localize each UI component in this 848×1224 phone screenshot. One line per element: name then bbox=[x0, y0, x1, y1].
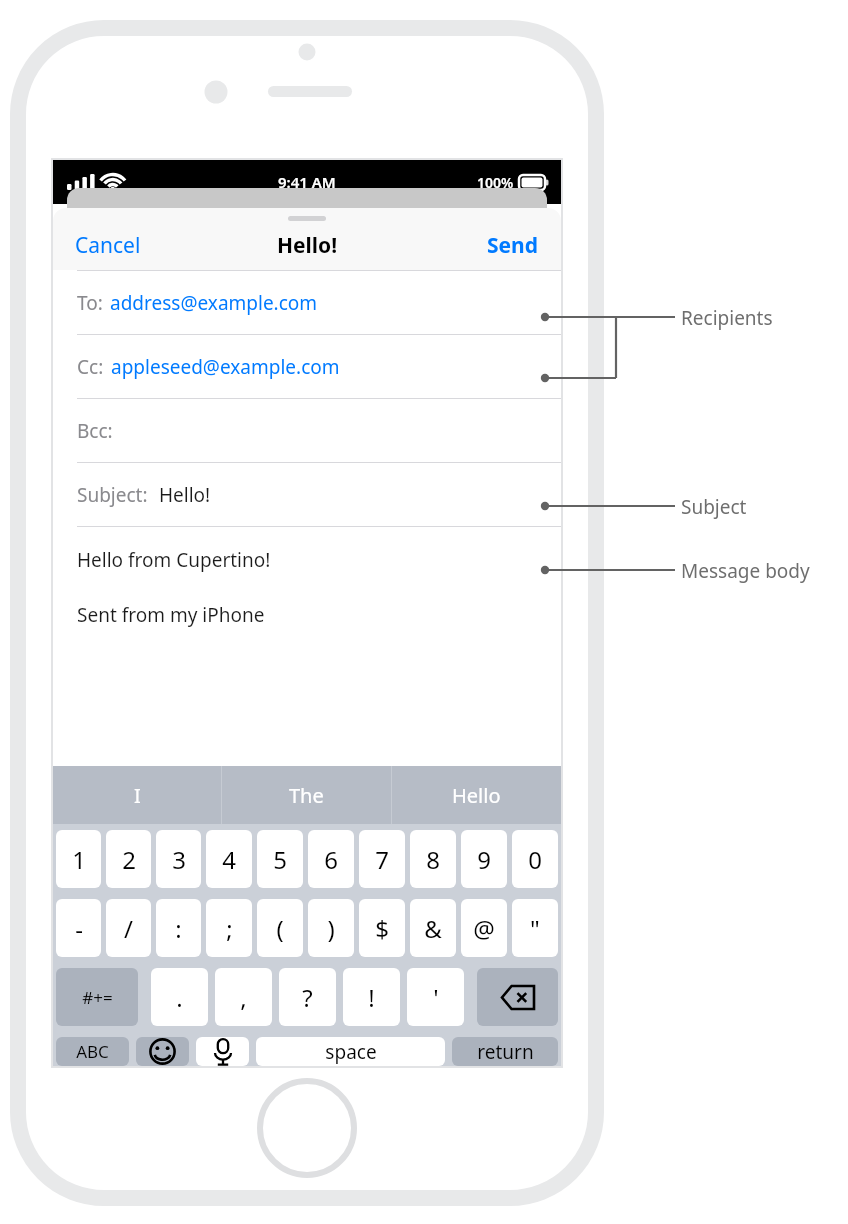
staticText: appleseed@example.com bbox=[111, 354, 340, 380]
staticText: ! bbox=[368, 981, 375, 1014]
staticText: & bbox=[424, 912, 442, 945]
staticText: return bbox=[477, 1039, 534, 1065]
button[interactable]: ' bbox=[407, 968, 464, 1026]
staticText: The bbox=[289, 782, 324, 809]
button[interactable]: . bbox=[151, 968, 208, 1026]
staticText: , bbox=[240, 981, 247, 1014]
button[interactable]: Cancel bbox=[53, 223, 163, 268]
staticText: address@example.com bbox=[110, 290, 318, 316]
button[interactable]: ; bbox=[206, 899, 252, 957]
button[interactable]: ! bbox=[343, 968, 400, 1026]
button[interactable]: Hello bbox=[392, 766, 561, 824]
staticText: Send bbox=[487, 231, 539, 260]
staticText: ( bbox=[276, 912, 284, 945]
staticText: " bbox=[530, 912, 540, 945]
staticText: Message body bbox=[681, 558, 810, 584]
staticText: . bbox=[176, 981, 183, 1014]
staticText: ' bbox=[433, 981, 439, 1014]
button[interactable]: Hello from Cupertino! bbox=[53, 527, 561, 628]
button[interactable]: #+= bbox=[56, 968, 138, 1026]
staticText: 100% bbox=[477, 173, 514, 192]
button[interactable]: Cc: bbox=[53, 335, 561, 398]
staticText: Bcc: bbox=[77, 418, 113, 444]
button[interactable]: ? bbox=[279, 968, 336, 1026]
staticText: 3 bbox=[172, 843, 186, 876]
button[interactable]: 4 bbox=[206, 830, 252, 888]
button[interactable]: 9 bbox=[461, 830, 507, 888]
button[interactable]: To: bbox=[53, 271, 561, 334]
staticText: 9:41 AM bbox=[278, 172, 336, 192]
button[interactable]: 6 bbox=[308, 830, 354, 888]
staticText: Hello! bbox=[277, 231, 338, 260]
button[interactable]: " bbox=[512, 899, 558, 957]
button[interactable]: I bbox=[53, 766, 221, 824]
button[interactable]: @ bbox=[461, 899, 507, 957]
staticText: space bbox=[325, 1039, 377, 1065]
staticText: #+= bbox=[82, 986, 113, 1009]
button[interactable]: Emoji bbox=[136, 1037, 189, 1066]
staticText: 6 bbox=[324, 843, 338, 876]
staticText: 7 bbox=[375, 843, 389, 876]
staticText: 9 bbox=[477, 843, 491, 876]
staticText: 0 bbox=[528, 843, 542, 876]
staticText: ? bbox=[302, 981, 313, 1014]
button[interactable]: 0 bbox=[512, 830, 558, 888]
button[interactable]: 5 bbox=[257, 830, 303, 888]
staticText: Hello! bbox=[159, 482, 211, 508]
button[interactable]: : bbox=[156, 899, 201, 957]
button[interactable]: & bbox=[410, 899, 456, 957]
staticText: @ bbox=[473, 912, 495, 945]
staticText: / bbox=[124, 912, 133, 945]
staticText: ) bbox=[327, 912, 335, 945]
staticText: ABC bbox=[76, 1040, 109, 1063]
button[interactable]: 8 bbox=[410, 830, 456, 888]
button[interactable]: The bbox=[222, 766, 391, 824]
button[interactable]: / bbox=[106, 899, 151, 957]
button[interactable]: - bbox=[56, 899, 101, 957]
button[interactable]: Subject: bbox=[53, 463, 561, 526]
staticText: 4 bbox=[222, 843, 236, 876]
button[interactable]: Dictate bbox=[196, 1037, 249, 1066]
staticText: $ bbox=[375, 912, 389, 945]
staticText: I bbox=[134, 782, 141, 809]
button[interactable]: Delete bbox=[477, 968, 558, 1026]
button[interactable]: 1 bbox=[56, 830, 101, 888]
button[interactable]: , bbox=[215, 968, 272, 1026]
staticText: - bbox=[75, 912, 83, 945]
button[interactable]: 7 bbox=[359, 830, 405, 888]
staticText: Subject bbox=[681, 494, 747, 520]
staticText: Subject: bbox=[77, 482, 148, 508]
staticText: Recipients bbox=[681, 305, 773, 331]
button[interactable]: return bbox=[452, 1037, 558, 1066]
button[interactable]: Send bbox=[465, 223, 561, 268]
staticText: 2 bbox=[122, 843, 136, 876]
staticText: To: bbox=[77, 290, 103, 316]
button[interactable]: ( bbox=[257, 899, 303, 957]
staticText: Hello from Cupertino! bbox=[77, 547, 271, 573]
staticText: 8 bbox=[426, 843, 440, 876]
staticText: Sent from my iPhone bbox=[77, 602, 265, 628]
button[interactable]: $ bbox=[359, 899, 405, 957]
staticText: Cc: bbox=[77, 354, 104, 380]
staticText: Hello bbox=[452, 782, 501, 809]
staticText: Cancel bbox=[75, 231, 141, 260]
button[interactable]: ) bbox=[308, 899, 354, 957]
button[interactable]: Bcc: bbox=[53, 399, 561, 462]
button[interactable]: 3 bbox=[156, 830, 201, 888]
staticText: 5 bbox=[273, 843, 287, 876]
staticText: : bbox=[175, 912, 182, 945]
button[interactable]: ABC bbox=[56, 1037, 129, 1066]
staticText: ; bbox=[226, 912, 233, 945]
button[interactable]: space bbox=[256, 1037, 445, 1066]
button[interactable]: 2 bbox=[106, 830, 151, 888]
staticText: 1 bbox=[72, 843, 86, 876]
